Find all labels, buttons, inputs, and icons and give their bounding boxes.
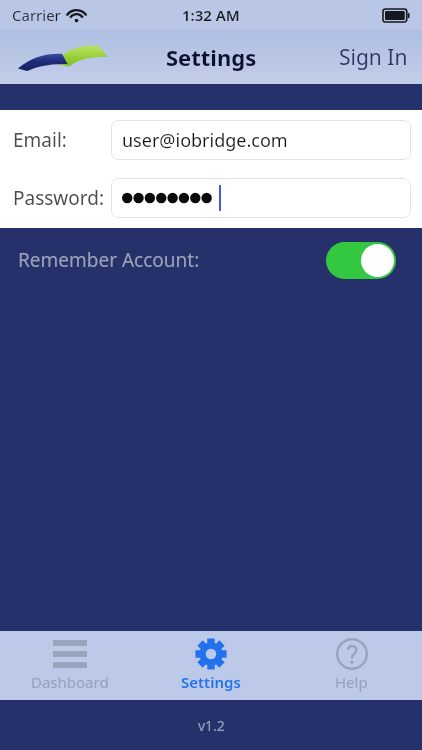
staticText: Dashboard xyxy=(31,672,109,692)
button[interactable]: Remember Account toggle xyxy=(326,242,396,279)
button[interactable]: user@iobridge.com xyxy=(111,120,411,160)
staticText: Email: xyxy=(13,127,67,153)
staticText: Carrier xyxy=(12,5,61,25)
staticText: Settings xyxy=(181,672,241,692)
button[interactable]: Remember Account: xyxy=(0,228,422,292)
staticText: Password: xyxy=(13,185,105,211)
other: Logo xyxy=(16,41,108,73)
staticText: Sign In xyxy=(339,43,408,72)
button[interactable] xyxy=(111,178,411,218)
staticText: 1:32 AM xyxy=(182,5,240,25)
staticText: user@iobridge.com xyxy=(122,128,288,153)
button[interactable]: Settings xyxy=(140,631,281,700)
staticText: Settings xyxy=(166,42,257,72)
button[interactable]: Help xyxy=(281,631,422,700)
staticText: Remember Account: xyxy=(18,247,200,273)
staticText: Help xyxy=(335,672,368,692)
button[interactable]: Sign In xyxy=(325,35,422,80)
button[interactable]: Dashboard xyxy=(0,631,140,700)
staticText: v1.2 xyxy=(198,716,225,735)
